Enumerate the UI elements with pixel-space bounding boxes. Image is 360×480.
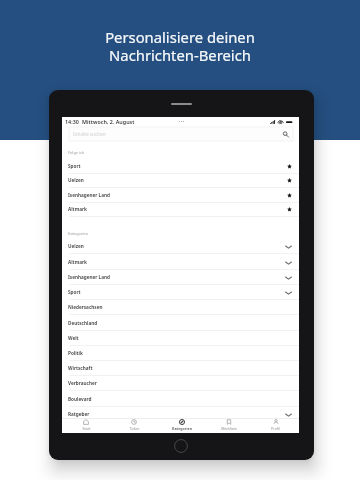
staticText: Altmark bbox=[68, 258, 87, 265]
staticText: Folge ich bbox=[68, 150, 85, 155]
staticText: Altmark bbox=[68, 205, 87, 212]
staticText: Ticker bbox=[129, 426, 140, 431]
staticText: Profil bbox=[271, 426, 280, 431]
button[interactable]: Welt bbox=[62, 331, 299, 346]
button[interactable]: Wirtschaft bbox=[62, 361, 299, 376]
staticText: Deutschland bbox=[68, 319, 98, 326]
button[interactable]: Boulevard bbox=[62, 392, 299, 407]
staticText: Merkliste bbox=[221, 426, 237, 431]
staticText: Mittwoch, 2. August bbox=[82, 118, 135, 125]
button[interactable]: Isenhagener Land bbox=[62, 188, 299, 203]
staticText: Kategorien bbox=[68, 231, 89, 236]
staticText: Personalisiere deinen Nachrichten-Bereic… bbox=[0, 27, 360, 65]
button[interactable]: Inhalte suchen bbox=[69, 127, 293, 141]
staticText: Start bbox=[82, 426, 91, 431]
staticText: Kategorien bbox=[172, 426, 192, 431]
button[interactable]: Start bbox=[62, 419, 110, 433]
staticText: Welt bbox=[68, 334, 79, 341]
staticText: 14:30 bbox=[65, 118, 79, 125]
button[interactable]: Profil bbox=[252, 419, 299, 433]
button[interactable]: Uelzen bbox=[62, 173, 299, 188]
button[interactable]: Niedersachsen bbox=[62, 300, 299, 315]
button[interactable]: Merkliste bbox=[205, 419, 252, 433]
staticText: Isenhagener Land bbox=[68, 191, 110, 198]
button[interactable]: Uelzen bbox=[62, 239, 299, 254]
button[interactable]: Isenhagener Land bbox=[62, 270, 299, 285]
button[interactable]: Sport bbox=[62, 285, 299, 300]
button[interactable]: Ticker bbox=[110, 419, 158, 433]
button[interactable]: Kategorien bbox=[158, 419, 205, 433]
button[interactable]: Verbraucher bbox=[62, 376, 299, 391]
button[interactable]: Altmark bbox=[62, 255, 299, 270]
staticText: Niedersachsen bbox=[68, 303, 103, 310]
staticText: Wirtschaft bbox=[68, 364, 93, 371]
button[interactable]: Ratgeber bbox=[62, 407, 299, 422]
staticText: Sport bbox=[68, 288, 81, 295]
staticText: Politik bbox=[68, 349, 83, 356]
staticText: Isenhagener Land bbox=[68, 273, 110, 280]
staticText: Ratgeber bbox=[68, 410, 90, 417]
staticText: Inhalte suchen bbox=[73, 131, 106, 137]
button[interactable]: Deutschland bbox=[62, 316, 299, 331]
button[interactable]: Altmark bbox=[62, 202, 299, 217]
staticText: Uelzen bbox=[68, 176, 84, 183]
staticText: Verbraucher bbox=[68, 379, 97, 386]
staticText: Sport bbox=[68, 162, 81, 169]
button[interactable]: Politik bbox=[62, 346, 299, 361]
staticText: Uelzen bbox=[68, 242, 84, 249]
staticText: Boulevard bbox=[68, 395, 92, 402]
button[interactable]: Sport bbox=[62, 159, 299, 174]
